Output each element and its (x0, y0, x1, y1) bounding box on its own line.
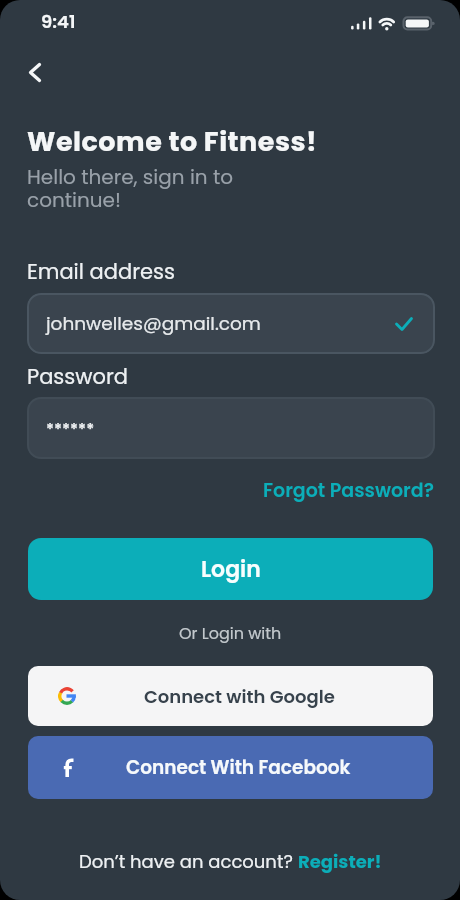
button[interactable]: Connect With Facebook (28, 736, 433, 799)
staticText: Or Login with (179, 622, 282, 644)
button[interactable]: johnwelles@gmail.com (27, 293, 435, 354)
staticText: Connect With Facebook (126, 755, 351, 781)
staticText: Don’t have an account? (79, 849, 298, 874)
staticText: Password (27, 362, 128, 391)
staticText: ****** (46, 419, 95, 441)
button[interactable]: Login (28, 538, 433, 600)
staticText: Email address (27, 257, 175, 286)
button[interactable]: ****** (27, 397, 435, 459)
staticText: Hello there, sign in to (27, 163, 234, 191)
button[interactable] (18, 54, 52, 90)
staticText: johnwelles@gmail.com (46, 311, 261, 337)
button[interactable]: Register! (298, 849, 382, 874)
button[interactable]: Forgot Password? (263, 477, 434, 504)
staticText: Connect with Google (144, 684, 335, 709)
button[interactable]: Connect with Google (28, 666, 433, 726)
staticText: Login (201, 554, 261, 585)
staticText: Welcome to Fitness! (27, 123, 318, 161)
staticText: 9:41 (41, 9, 76, 34)
staticText: continue! (27, 186, 121, 214)
